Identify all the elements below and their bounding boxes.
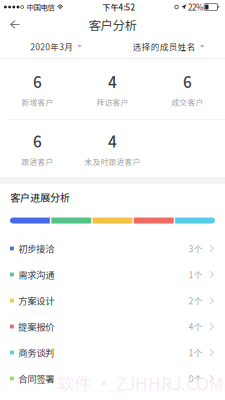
staticText: 1个: [188, 346, 202, 359]
staticText: 0个: [188, 372, 202, 385]
button[interactable]: 合同签署: [0, 365, 225, 391]
staticText: 2020年3月: [30, 40, 73, 53]
staticText: 6: [183, 70, 192, 92]
staticText: 拜访客户: [96, 96, 128, 108]
staticText: 成交客户: [171, 96, 203, 108]
staticText: 客户进展分析: [10, 190, 70, 204]
button[interactable]: 2020年3月: [27, 34, 85, 59]
staticText: 新增客户: [21, 96, 53, 108]
staticText: 6: [33, 130, 42, 152]
staticText: 方案设计: [18, 294, 54, 307]
staticText: 4个: [188, 320, 202, 333]
button[interactable]: 选择的成员姓名: [130, 34, 208, 59]
staticText: 提案报价: [18, 320, 54, 333]
staticText: 需求沟通: [18, 268, 54, 281]
staticText: 软件 · ZJHHRJ.COM: [57, 370, 223, 396]
staticText: 2个: [188, 294, 202, 307]
button[interactable]: 提案报价: [0, 313, 225, 339]
staticText: 中国电信: [27, 2, 55, 12]
staticText: 22%: [188, 1, 203, 13]
staticText: 下午4:52: [102, 1, 135, 13]
staticText: 商务谈判: [18, 346, 54, 359]
staticText: 客户分析: [88, 15, 136, 33]
staticText: 4: [108, 130, 117, 152]
staticText: 合同签署: [18, 372, 54, 385]
button[interactable]: 商务谈判: [0, 339, 225, 365]
staticText: 初步接洽: [18, 242, 54, 255]
staticText: 3个: [188, 242, 202, 255]
staticText: 跟进客户: [21, 156, 53, 167]
button[interactable]: 返回: [0, 14, 30, 34]
staticText: 1个: [188, 268, 202, 281]
staticText: 6: [33, 70, 42, 92]
staticText: 未及时跟进客户: [84, 156, 140, 167]
button[interactable]: 方案设计: [0, 287, 225, 313]
button[interactable]: 初步接洽: [0, 235, 225, 261]
staticText: 选择的成员姓名: [133, 40, 196, 53]
button[interactable]: 需求沟通: [0, 261, 225, 287]
staticText: 4: [108, 70, 117, 92]
